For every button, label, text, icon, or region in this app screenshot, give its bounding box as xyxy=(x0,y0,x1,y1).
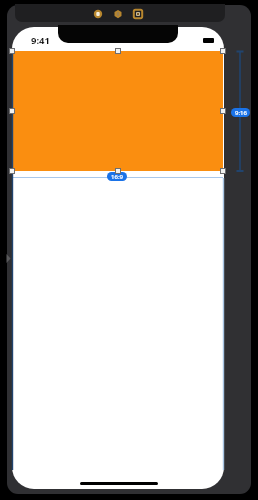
button[interactable]: Zoom xyxy=(133,9,143,19)
staticText: 16:9 xyxy=(111,173,123,181)
staticText: 9:16 xyxy=(235,109,247,117)
button[interactable]: 9:16 xyxy=(231,108,250,117)
button[interactable]: Theme xyxy=(93,9,103,19)
button[interactable]: Selected image placeholder xyxy=(12,51,223,171)
button[interactable]: Device xyxy=(113,9,123,19)
staticText: 9:41 xyxy=(31,34,50,47)
button[interactable]: 16:9 xyxy=(107,172,127,181)
